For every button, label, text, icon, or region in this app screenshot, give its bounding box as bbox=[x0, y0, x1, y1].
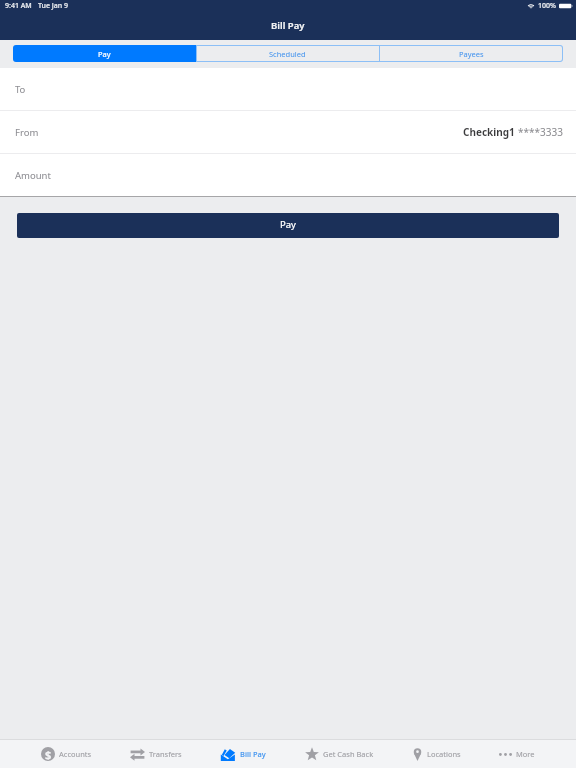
button[interactable]: Bill Pay bbox=[220, 740, 266, 768]
staticText: Scheduled bbox=[269, 49, 306, 59]
staticText: From bbox=[15, 126, 39, 139]
staticText: 9:41 AM bbox=[5, 1, 32, 11]
staticText: Pay bbox=[98, 49, 111, 59]
staticText: Checking1 bbox=[463, 125, 515, 139]
staticText: To bbox=[15, 83, 26, 96]
button[interactable]: Amount bbox=[0, 154, 576, 196]
staticText: Bill Pay bbox=[240, 749, 266, 759]
staticText: ****3333 bbox=[518, 125, 563, 139]
button[interactable]: Get Cash Back bbox=[305, 740, 374, 768]
button[interactable]: More bbox=[499, 740, 535, 768]
staticText: Bill Pay bbox=[271, 19, 305, 32]
staticText: Get Cash Back bbox=[323, 749, 374, 759]
button[interactable]: Transfers bbox=[130, 740, 182, 768]
staticText: 100% bbox=[538, 1, 556, 11]
button[interactable]: Pay bbox=[13, 45, 196, 62]
staticText: Payees bbox=[459, 49, 484, 59]
staticText: Accounts bbox=[59, 749, 92, 759]
staticText: Pay bbox=[280, 218, 296, 231]
staticText: $ bbox=[45, 747, 52, 761]
button[interactable]: Pay bbox=[17, 213, 559, 238]
button[interactable]: Payees bbox=[380, 45, 563, 62]
staticText: Amount bbox=[15, 169, 51, 182]
button[interactable]: From bbox=[0, 111, 576, 153]
staticText: More bbox=[516, 749, 535, 759]
button[interactable]: Accounts bbox=[41, 740, 92, 768]
staticText: Locations bbox=[427, 749, 461, 759]
button[interactable]: Locations bbox=[412, 740, 461, 768]
staticText: Tue Jan 9 bbox=[38, 1, 69, 11]
button[interactable]: Scheduled bbox=[196, 45, 379, 62]
staticText: Transfers bbox=[149, 749, 182, 759]
